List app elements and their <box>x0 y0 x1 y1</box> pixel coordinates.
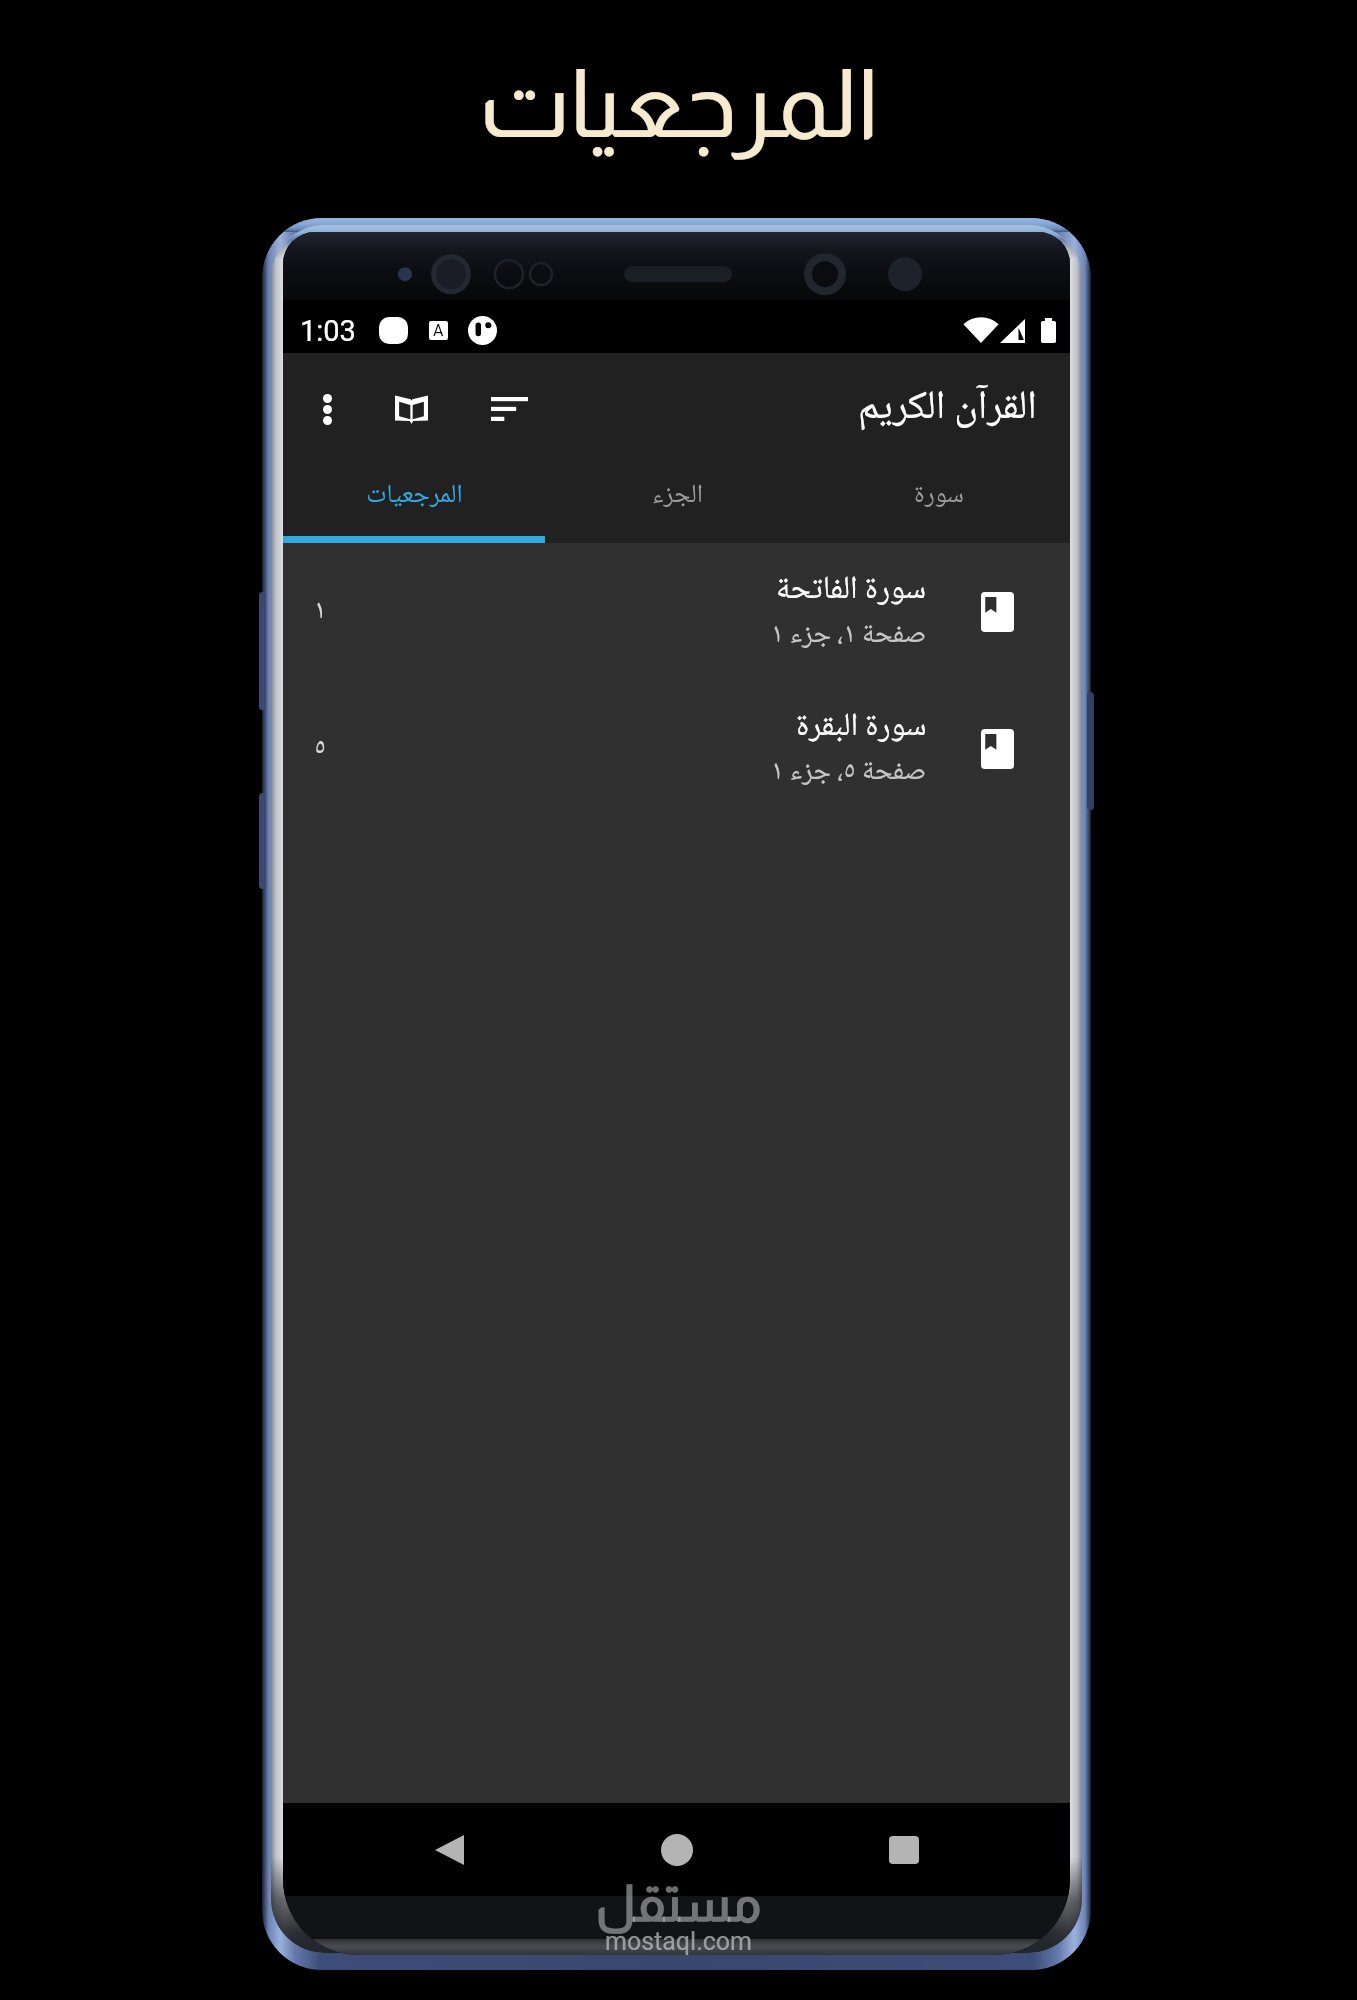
staticText: القرآن الكريم <box>858 375 1037 443</box>
staticText: صفحة ١، جزء ١ <box>771 612 927 660</box>
button[interactable]: Sort <box>481 381 537 437</box>
button[interactable]: Home <box>640 1813 714 1887</box>
button[interactable]: ٥ <box>283 680 1070 817</box>
staticText: A <box>433 321 444 340</box>
staticText: الجزء <box>652 474 703 518</box>
button[interactable]: المرجعيات <box>283 454 546 543</box>
button[interactable]: More options <box>299 381 355 437</box>
button[interactable]: سورة <box>808 454 1070 543</box>
staticText: سورة الفاتحة <box>776 564 927 618</box>
button[interactable]: Recent apps <box>867 1813 941 1887</box>
staticText: مستقل <box>596 1876 762 1932</box>
button[interactable]: ١ <box>283 543 1070 680</box>
button[interactable]: الجزء <box>546 454 808 543</box>
staticText: سورة <box>914 474 964 518</box>
button[interactable]: Back <box>412 1813 486 1887</box>
staticText: صفحة ٥، جزء ١ <box>771 749 927 797</box>
staticText: ١ <box>314 589 327 635</box>
staticText: 1:03 <box>300 314 356 348</box>
staticText: mostaql.com <box>605 1927 753 1956</box>
staticText: سورة البقرة <box>796 701 927 755</box>
staticText: المرجعيات <box>479 51 879 157</box>
button[interactable]: Open book <box>383 381 439 437</box>
staticText: المرجعيات <box>366 474 463 518</box>
staticText: ٥ <box>314 726 327 772</box>
